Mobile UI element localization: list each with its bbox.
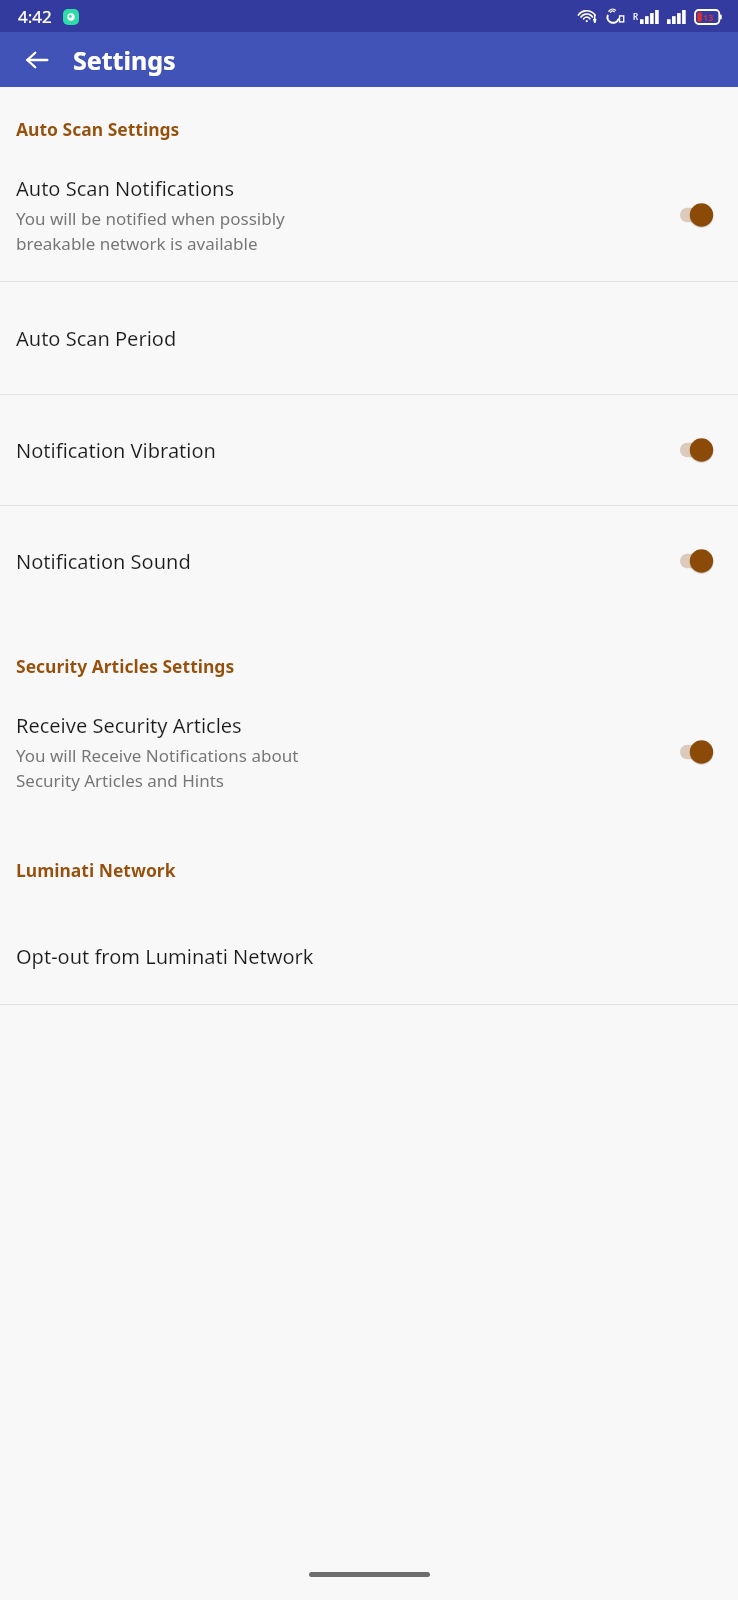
button[interactable]: Auto Scan Period bbox=[0, 282, 738, 394]
staticText: Auto Scan Settings bbox=[16, 117, 180, 141]
staticText: R bbox=[633, 11, 638, 22]
button[interactable]: Toggle bbox=[680, 437, 714, 463]
staticText: You will Receive Notifications about bbox=[16, 744, 299, 767]
staticText: Receive Security Articles bbox=[16, 712, 242, 739]
staticText: breakable network is available bbox=[16, 232, 258, 255]
button[interactable]: Toggle bbox=[680, 202, 714, 228]
staticText: 13 bbox=[703, 11, 714, 23]
staticText: Security Articles Settings bbox=[16, 654, 235, 678]
button[interactable]: Toggle bbox=[680, 548, 714, 574]
staticText: 4:42 bbox=[18, 5, 52, 28]
staticText: You will be notified when possibly bbox=[16, 207, 285, 230]
staticText: Settings bbox=[73, 43, 176, 77]
staticText: Security Articles and Hints bbox=[16, 769, 225, 792]
staticText: Opt-out from Luminati Network bbox=[16, 943, 314, 970]
button[interactable]: Notification Vibration bbox=[0, 395, 738, 505]
staticText: Notification Sound bbox=[16, 548, 680, 575]
staticText: Auto Scan Period bbox=[16, 325, 177, 352]
staticText: Auto Scan Notifications bbox=[16, 175, 234, 202]
button[interactable]: Notification Sound bbox=[0, 506, 738, 616]
staticText: Notification Vibration bbox=[16, 437, 680, 464]
button[interactable]: Toggle bbox=[680, 739, 714, 765]
staticText: Luminati Network bbox=[16, 858, 176, 882]
button[interactable]: Auto Scan Notifications bbox=[0, 167, 738, 281]
button[interactable]: Receive Security Articles bbox=[0, 704, 738, 818]
button[interactable]: Opt-out from Luminati Network bbox=[0, 908, 738, 1004]
button[interactable]: Back bbox=[14, 37, 60, 83]
